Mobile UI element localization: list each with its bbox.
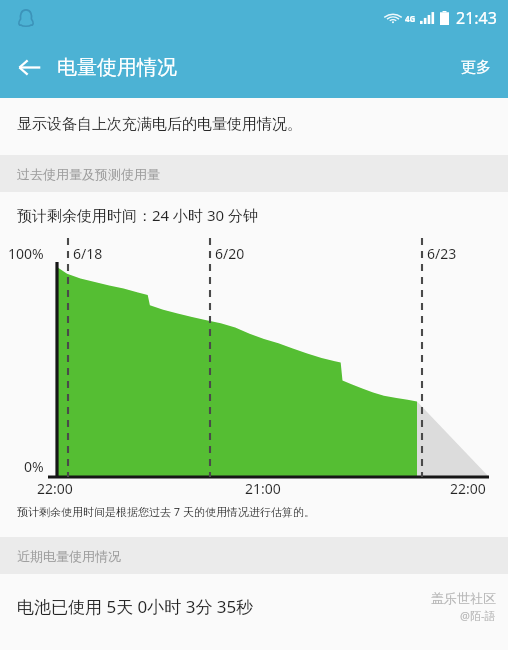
staticText: 21:00 xyxy=(245,479,281,498)
staticText: 显示设备自上次充满电后的电量使用情况。 xyxy=(17,115,302,134)
button[interactable]: 返回 xyxy=(6,44,52,90)
staticText: 6/18 xyxy=(73,244,103,263)
staticText: @陌-語 xyxy=(460,608,496,623)
staticText: 4G xyxy=(405,13,416,24)
staticText: 100% xyxy=(8,244,44,263)
staticText: 电量使用情况 xyxy=(57,55,177,80)
staticText: 更多 xyxy=(461,58,491,77)
button[interactable]: 更多 xyxy=(444,36,508,98)
staticText: 21:43 xyxy=(456,7,497,29)
other: QQ xyxy=(17,9,35,27)
staticText: 6/23 xyxy=(427,244,457,263)
staticText: 盖乐世社区 xyxy=(431,590,496,606)
staticText: 6/20 xyxy=(215,244,245,263)
staticText: 近期电量使用情况 xyxy=(17,548,121,564)
staticText: 过去使用量及预测使用量 xyxy=(17,166,160,182)
staticText: 22:00 xyxy=(37,479,73,498)
staticText: 电池已使用 5天 0小时 3分 35秒 xyxy=(17,595,431,618)
staticText: 0% xyxy=(24,457,44,476)
staticText: 预计剩余使用时间：24 小时 30 分钟 xyxy=(17,205,259,225)
staticText: 预计剩余使用时间是根据您过去 7 天的使用情况进行估算的。 xyxy=(17,504,316,519)
staticText: 22:00 xyxy=(450,479,486,498)
